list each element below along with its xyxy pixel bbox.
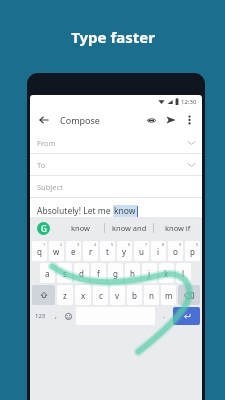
staticText: know and bbox=[112, 223, 147, 233]
button[interactable]: y bbox=[117, 241, 132, 261]
staticText: n bbox=[149, 290, 154, 301]
staticText: b bbox=[132, 290, 137, 301]
staticText: o bbox=[173, 246, 178, 257]
button[interactable]: o bbox=[168, 241, 183, 261]
staticText: l bbox=[182, 268, 185, 279]
staticText: y bbox=[122, 246, 127, 257]
button[interactable]: p bbox=[185, 241, 200, 261]
staticText: 4 bbox=[94, 242, 97, 247]
staticText: d bbox=[79, 268, 84, 279]
staticText: . bbox=[163, 311, 165, 321]
staticText: z bbox=[63, 290, 67, 301]
button[interactable]: Shift bbox=[32, 285, 55, 305]
staticText: c bbox=[99, 290, 103, 301]
button[interactable]: k bbox=[159, 263, 174, 283]
button[interactable]: Back bbox=[36, 112, 52, 128]
button[interactable]: v bbox=[110, 285, 125, 305]
button[interactable]: m bbox=[161, 285, 176, 305]
staticText: Compose bbox=[60, 114, 100, 126]
staticText: m bbox=[165, 290, 173, 301]
staticText: g bbox=[113, 268, 118, 279]
button[interactable]: w bbox=[49, 241, 64, 261]
staticText: k bbox=[164, 268, 169, 279]
staticText: 5 bbox=[111, 242, 114, 247]
button[interactable]: Period bbox=[156, 307, 172, 325]
button[interactable]: s bbox=[57, 263, 72, 283]
staticText: q bbox=[37, 246, 42, 257]
staticText: Subject bbox=[37, 182, 63, 192]
staticText: a bbox=[45, 268, 50, 279]
button[interactable]: n bbox=[144, 285, 159, 305]
button[interactable]: More options bbox=[182, 113, 196, 127]
staticText: To bbox=[37, 160, 46, 170]
staticText: know bbox=[71, 223, 90, 233]
button[interactable]: Enter bbox=[173, 307, 200, 325]
staticText: r bbox=[89, 246, 93, 257]
staticText: h bbox=[130, 268, 135, 279]
button[interactable]: x bbox=[75, 285, 91, 305]
staticText: 6 bbox=[128, 242, 131, 247]
staticText: u bbox=[139, 246, 144, 257]
staticText: G bbox=[41, 223, 47, 234]
button[interactable]: Subject bbox=[30, 176, 202, 198]
staticText: , bbox=[55, 311, 57, 321]
staticText: From bbox=[37, 138, 56, 148]
staticText: know if bbox=[165, 223, 191, 233]
staticText: 9 bbox=[179, 242, 182, 247]
staticText: x bbox=[81, 290, 86, 301]
button[interactable]: c bbox=[93, 285, 108, 305]
button[interactable]: e bbox=[66, 241, 81, 261]
button[interactable]: f bbox=[91, 263, 106, 283]
button[interactable]: h bbox=[125, 263, 140, 283]
button[interactable]: From bbox=[30, 132, 202, 154]
button[interactable]: r bbox=[83, 241, 98, 261]
button[interactable]: Backspace bbox=[178, 285, 200, 305]
staticText: w bbox=[53, 246, 60, 257]
button[interactable]: know bbox=[56, 217, 104, 239]
staticText: 3 bbox=[77, 242, 80, 247]
button[interactable]: b bbox=[127, 285, 142, 305]
staticText: Absolutely! Let me bbox=[37, 205, 113, 217]
staticText: f bbox=[97, 268, 100, 279]
staticText: 0 bbox=[196, 242, 199, 247]
button[interactable]: u bbox=[134, 241, 149, 261]
staticText: Type faster bbox=[71, 27, 155, 47]
staticText: know bbox=[114, 205, 136, 217]
staticText: 7 bbox=[145, 242, 148, 247]
button[interactable]: t bbox=[100, 241, 115, 261]
staticText: t bbox=[106, 246, 109, 257]
staticText: 1 bbox=[43, 242, 46, 247]
staticText: e bbox=[71, 246, 76, 257]
staticText: 12:30 bbox=[181, 98, 197, 106]
staticText: s bbox=[63, 268, 67, 279]
button[interactable]: 123 bbox=[31, 307, 49, 325]
button[interactable]: Comma bbox=[49, 307, 62, 325]
staticText: 8 bbox=[162, 242, 165, 247]
button[interactable]: a bbox=[40, 263, 55, 283]
button[interactable]: q bbox=[32, 241, 47, 261]
button[interactable]: d bbox=[74, 263, 89, 283]
staticText: 123 bbox=[35, 312, 46, 320]
button[interactable]: To bbox=[30, 154, 202, 176]
button[interactable]: j bbox=[142, 263, 157, 283]
button[interactable]: Grammarly bbox=[30, 217, 56, 239]
button[interactable]: know and bbox=[105, 217, 153, 239]
button[interactable]: Emoji bbox=[62, 307, 75, 325]
staticText: j bbox=[148, 268, 151, 279]
button[interactable]: g bbox=[108, 263, 123, 283]
staticText: 2 bbox=[60, 242, 63, 247]
staticText: p bbox=[190, 246, 195, 257]
button[interactable]: Send bbox=[163, 112, 179, 128]
staticText: i bbox=[157, 246, 160, 257]
button[interactable]: z bbox=[57, 285, 73, 305]
button[interactable]: i bbox=[151, 241, 166, 261]
button[interactable]: know if bbox=[154, 217, 202, 239]
button[interactable]: l bbox=[176, 263, 191, 283]
staticText: v bbox=[115, 290, 120, 301]
button[interactable]: Attach file bbox=[143, 112, 159, 128]
